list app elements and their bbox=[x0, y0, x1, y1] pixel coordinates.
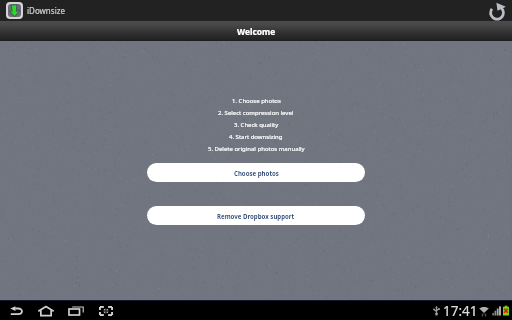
staticText: 1. Choose photos bbox=[232, 97, 281, 105]
button[interactable]: Refresh bbox=[489, 0, 507, 21]
button[interactable]: Remove Dropbox support bbox=[147, 206, 365, 225]
staticText: 3. Check quality bbox=[234, 121, 279, 129]
button[interactable]: App icon bbox=[8, 4, 21, 17]
staticText: 2. Select compression level bbox=[218, 109, 294, 117]
button[interactable]: Home bbox=[31, 301, 61, 320]
staticText: Remove Dropbox support bbox=[217, 212, 295, 220]
staticText: iDownsize bbox=[27, 5, 65, 16]
button[interactable]: Recent apps bbox=[61, 301, 91, 320]
button[interactable]: Back bbox=[1, 301, 31, 320]
button[interactable]: Screenshot bbox=[91, 301, 121, 320]
staticText: 5. Delete original photos manually bbox=[208, 145, 305, 153]
button[interactable]: Choose photos bbox=[147, 163, 365, 182]
staticText: Choose photos bbox=[234, 169, 279, 177]
staticText: 4. Start downsizing bbox=[229, 133, 283, 141]
staticText: Welcome bbox=[237, 26, 276, 37]
staticText: 17:41 bbox=[443, 302, 478, 320]
